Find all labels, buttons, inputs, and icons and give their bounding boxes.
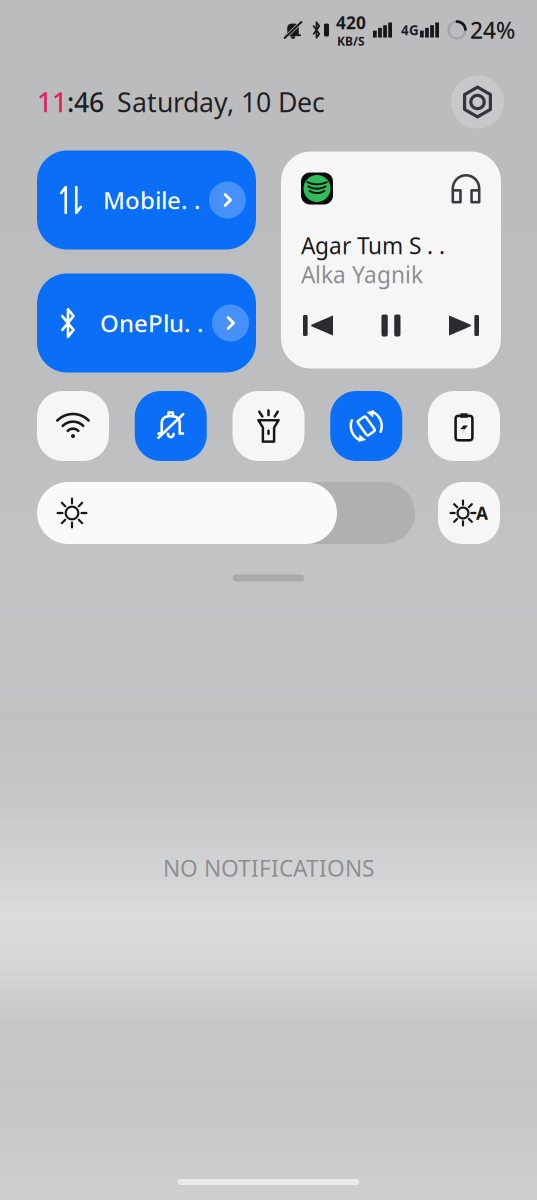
staticText: 4G [401, 21, 419, 39]
staticText: 24% [470, 15, 515, 45]
button[interactable]: Mobile. . [37, 150, 256, 249]
staticText: OnePlu. . [100, 307, 204, 339]
button[interactable]: Flashlight [232, 391, 304, 461]
staticText: Agar Tum S . . [301, 230, 445, 260]
button[interactable]: Auto rotate [330, 391, 402, 461]
button[interactable]: Silent mode [135, 391, 207, 461]
staticText: KB/S [337, 33, 365, 49]
button[interactable]: Brightness [37, 482, 415, 544]
staticText: 420 [336, 11, 366, 34]
staticText: :46 [67, 84, 104, 120]
button[interactable]: Wi-Fi [37, 391, 109, 461]
staticText: Saturday, 10 Dec [117, 84, 325, 120]
button[interactable]: Auto brightness [438, 482, 500, 544]
staticText: NO NOTIFICATIONS [163, 853, 374, 883]
button[interactable]: OnePlu. . [37, 273, 256, 372]
button[interactable]: Settings [451, 75, 504, 128]
button[interactable]: Agar Tum S . . [281, 151, 501, 368]
staticText: A [476, 501, 488, 524]
staticText: Mobile. . [103, 184, 201, 216]
staticText: 11 [37, 84, 67, 120]
staticText: Alka Yagnik [301, 259, 423, 289]
button[interactable]: Battery saver [428, 391, 500, 461]
